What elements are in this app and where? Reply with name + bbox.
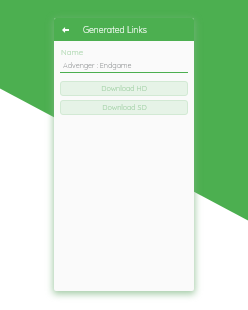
staticText: Download SD xyxy=(102,103,147,112)
button[interactable]: Back xyxy=(57,22,73,38)
staticText: Name xyxy=(61,47,84,57)
button[interactable]: Download HD xyxy=(60,81,188,96)
button[interactable]: Download SD xyxy=(60,100,188,115)
staticText: Generated Links xyxy=(83,24,147,35)
staticText: Advenger : Endgame xyxy=(63,61,132,70)
staticText: Download HD xyxy=(101,84,147,93)
